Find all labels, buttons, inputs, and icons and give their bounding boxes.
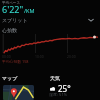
staticText: 25°	[58, 83, 71, 94]
button[interactable]: スプリット	[0, 15, 100, 25]
staticText: 心拍数	[2, 27, 17, 33]
staticText: 00:00	[2, 54, 11, 59]
staticText: /KM	[24, 7, 35, 14]
staticText: 湿度: 51%	[49, 92, 68, 97]
staticText: 天気	[50, 75, 60, 81]
staticText: マップ	[2, 75, 18, 81]
staticText: 6'22"	[2, 3, 24, 15]
staticText: スプリット	[2, 17, 28, 23]
staticText: 平均心拍数 158	[2, 59, 29, 64]
staticText: 10:00	[35, 54, 44, 59]
staticText: 平均ペース	[2, 1, 21, 6]
button[interactable]: Map	[3, 85, 34, 100]
staticText: 20:00	[67, 54, 76, 59]
